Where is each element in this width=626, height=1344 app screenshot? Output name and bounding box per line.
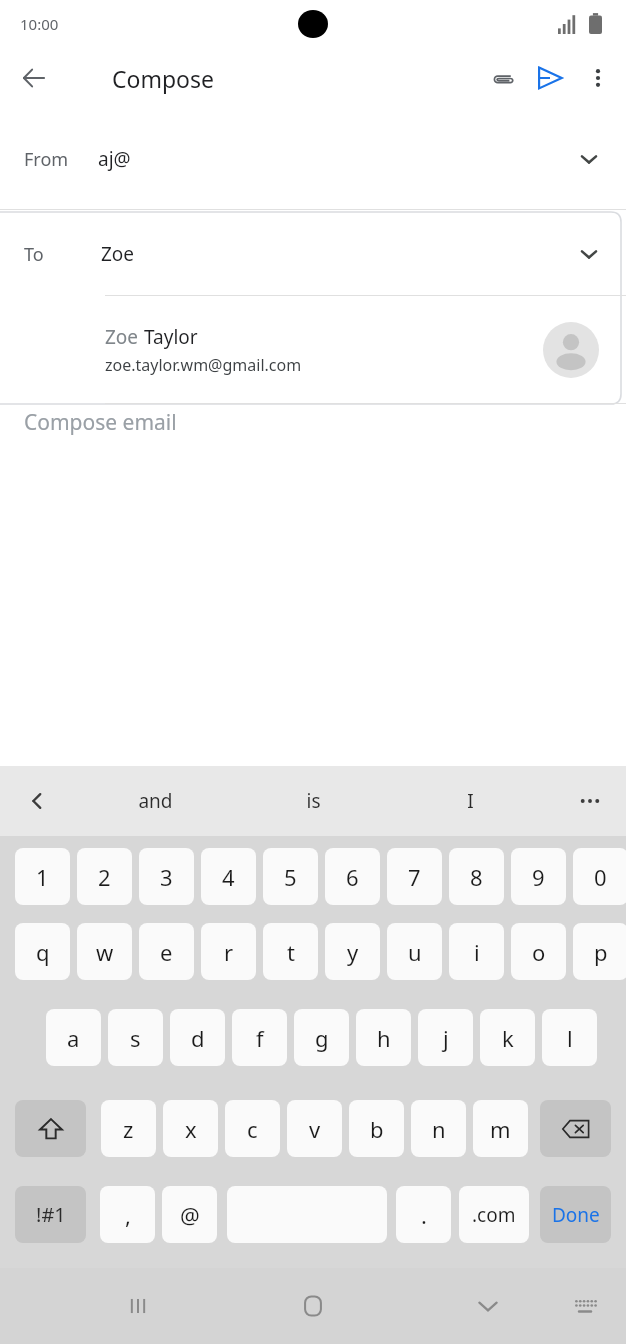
button[interactable]: Back: [10, 54, 58, 102]
button[interactable]: 5: [263, 848, 318, 905]
button[interactable]: From: [0, 108, 626, 210]
button[interactable]: y: [325, 923, 380, 980]
button[interactable]: j: [418, 1009, 473, 1066]
staticText: 1: [36, 862, 49, 892]
button[interactable]: m: [473, 1100, 528, 1157]
button[interactable]: is: [253, 766, 373, 836]
staticText: 10:00: [20, 14, 59, 34]
staticText: zoe.taylor.wm@gmail.com: [105, 354, 302, 376]
button[interactable]: 3: [139, 848, 194, 905]
button[interactable]: e: [139, 923, 194, 980]
button[interactable]: 0: [573, 848, 626, 905]
button[interactable]: 9: [511, 848, 566, 905]
button[interactable]: 2: [77, 848, 132, 905]
staticText: 6: [346, 862, 359, 892]
staticText: d: [191, 1023, 205, 1053]
staticText: l: [567, 1023, 573, 1053]
button[interactable]: d: [170, 1009, 225, 1066]
button[interactable]: Done: [540, 1186, 611, 1243]
button[interactable]: n: [411, 1100, 466, 1157]
staticText: and: [138, 788, 173, 814]
button[interactable]: Recent apps: [108, 1268, 168, 1344]
button[interactable]: Shift: [15, 1100, 86, 1157]
button[interactable]: u: [387, 923, 442, 980]
button[interactable]: a: [46, 1009, 101, 1066]
staticText: I: [467, 788, 474, 814]
staticText: 0: [594, 862, 607, 892]
button[interactable]: !#1: [15, 1186, 86, 1243]
button[interactable]: @: [162, 1186, 217, 1243]
button[interactable]: More suggestions: [566, 777, 614, 825]
staticText: 3: [160, 862, 173, 892]
button[interactable]: 6: [325, 848, 380, 905]
button[interactable]: and: [95, 766, 215, 836]
staticText: h: [377, 1023, 391, 1053]
button[interactable]: o: [511, 923, 566, 980]
staticText: x: [185, 1114, 197, 1144]
staticText: a: [67, 1023, 80, 1053]
staticText: 5: [284, 862, 297, 892]
staticText: p: [594, 937, 608, 967]
button[interactable]: k: [480, 1009, 535, 1066]
button[interactable]: Previous suggestions: [16, 780, 58, 822]
button[interactable]: g: [294, 1009, 349, 1066]
staticText: f: [256, 1023, 264, 1053]
button[interactable]: Backspace: [540, 1100, 611, 1157]
staticText: i: [474, 937, 480, 967]
button[interactable]: f: [232, 1009, 287, 1066]
button[interactable]: x: [163, 1100, 218, 1157]
button[interactable]: t: [263, 923, 318, 980]
button[interactable]: b: [349, 1100, 404, 1157]
staticText: y: [347, 937, 359, 967]
staticText: t: [287, 937, 295, 967]
staticText: c: [247, 1114, 258, 1144]
staticText: Compose email: [24, 408, 177, 437]
staticText: o: [532, 937, 546, 967]
button[interactable]: 1: [15, 848, 70, 905]
staticText: r: [224, 937, 234, 967]
button[interactable]: Home: [283, 1276, 343, 1336]
button[interactable]: To: [0, 212, 626, 296]
staticText: From: [24, 147, 69, 172]
button[interactable]: p: [573, 923, 626, 980]
staticText: 9: [532, 862, 545, 892]
button[interactable]: Attach file: [478, 54, 526, 102]
staticText: u: [408, 937, 422, 967]
staticText: @: [180, 1200, 200, 1230]
staticText: Done: [552, 1202, 600, 1228]
button[interactable]: i: [449, 923, 504, 980]
staticText: z: [123, 1114, 134, 1144]
button[interactable]: I: [410, 766, 530, 836]
button[interactable]: w: [77, 923, 132, 980]
staticText: Taylor: [144, 324, 198, 350]
button[interactable]: Zoe: [0, 296, 626, 404]
staticText: k: [502, 1023, 514, 1053]
button[interactable]: r: [201, 923, 256, 980]
button[interactable]: 4: [201, 848, 256, 905]
button[interactable]: .com: [459, 1186, 529, 1243]
staticText: .: [421, 1200, 427, 1230]
button[interactable]: .: [396, 1186, 451, 1243]
button[interactable]: s: [108, 1009, 163, 1066]
button[interactable]: c: [225, 1100, 280, 1157]
staticText: 4: [222, 862, 235, 892]
staticText: Zoe: [105, 324, 144, 350]
staticText: To: [24, 242, 44, 267]
button[interactable]: q: [15, 923, 70, 980]
button[interactable]: z: [101, 1100, 156, 1157]
button[interactable]: v: [287, 1100, 342, 1157]
button[interactable]: 7: [387, 848, 442, 905]
button[interactable]: 8: [449, 848, 504, 905]
staticText: aj@: [98, 146, 131, 172]
button[interactable]: More options: [574, 54, 622, 102]
button[interactable]: Send: [526, 54, 574, 102]
button[interactable]: Hide keyboard: [458, 1268, 518, 1344]
staticText: 7: [408, 862, 421, 892]
staticText: !#1: [36, 1201, 66, 1228]
button[interactable]: Keyboard layout: [558, 1278, 614, 1334]
button[interactable]: ,: [100, 1186, 155, 1243]
button[interactable]: h: [356, 1009, 411, 1066]
staticText: Compose: [112, 63, 215, 94]
button[interactable]: l: [542, 1009, 597, 1066]
